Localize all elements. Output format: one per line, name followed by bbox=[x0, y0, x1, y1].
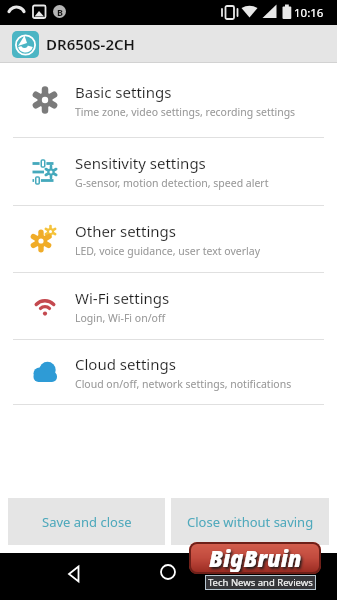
button[interactable]: Basic settings bbox=[0, 63, 337, 137]
staticText: Time zone, video settings, recording set… bbox=[75, 105, 296, 119]
staticText: LED, voice guidance, user text overlay bbox=[75, 244, 260, 258]
staticText: Login, Wi-Fi on/off bbox=[75, 311, 166, 325]
button[interactable] bbox=[160, 564, 176, 580]
button[interactable] bbox=[66, 565, 84, 583]
staticText: Save and close bbox=[42, 513, 132, 531]
staticText: Cloud on/off, network settings, notifica… bbox=[75, 377, 292, 391]
button[interactable]: Cloud settings bbox=[0, 340, 337, 404]
staticText: B bbox=[57, 6, 63, 18]
staticText: Cloud settings bbox=[75, 354, 176, 374]
button[interactable] bbox=[12, 31, 39, 58]
button[interactable]: BigBruin bbox=[189, 542, 321, 590]
button[interactable]: Other settings bbox=[0, 206, 337, 272]
staticText: 10:16 bbox=[294, 5, 324, 21]
staticText: DR650S-2CH bbox=[46, 34, 135, 54]
staticText: Sensitivity settings bbox=[75, 153, 206, 173]
staticText: BigBruin bbox=[209, 543, 302, 573]
staticText: Wi-Fi settings bbox=[75, 288, 170, 308]
staticText: Tech News and Reviews bbox=[208, 576, 313, 589]
staticText: Other settings bbox=[75, 221, 176, 241]
staticText: Close without saving bbox=[187, 513, 314, 531]
button[interactable]: Save and close bbox=[8, 498, 165, 545]
button[interactable]: Wi-Fi settings bbox=[0, 273, 337, 339]
staticText: Basic settings bbox=[75, 82, 172, 102]
button[interactable]: Close without saving bbox=[171, 498, 329, 545]
staticText: G-sensor, motion detection, speed alert bbox=[75, 176, 269, 190]
button[interactable]: Sensitivity settings bbox=[0, 138, 337, 205]
